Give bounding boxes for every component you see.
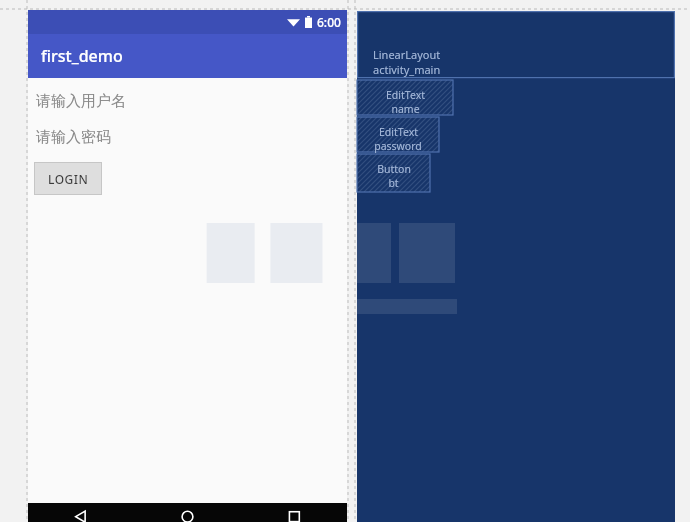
button[interactable]: EditText xyxy=(357,88,453,116)
other: System navigation bar xyxy=(28,503,347,522)
staticText: name xyxy=(391,102,420,116)
staticText: password xyxy=(374,139,422,153)
button[interactable]: first_demo xyxy=(28,34,347,78)
staticText: LinearLayout xyxy=(373,47,441,62)
button[interactable]: 请输入密码 xyxy=(31,121,286,153)
staticText: first_demo xyxy=(41,45,123,67)
button[interactable]: 请输入用户名 xyxy=(31,85,286,117)
staticText: LOGIN xyxy=(48,171,89,187)
staticText: 6:00 xyxy=(317,14,341,30)
staticText: EditText xyxy=(379,125,418,139)
staticText: Button xyxy=(377,162,411,176)
button[interactable]: LinearLayout xyxy=(373,47,441,77)
staticText: EditText xyxy=(386,88,425,102)
staticText: activity_main xyxy=(373,62,441,77)
staticText: 请输入密码 xyxy=(36,128,111,147)
button[interactable]: EditText xyxy=(357,125,439,153)
button[interactable]: Button xyxy=(357,162,430,190)
staticText: 请输入用户名 xyxy=(36,92,126,111)
staticText: bt xyxy=(388,176,399,190)
button[interactable]: LOGIN xyxy=(34,162,102,195)
